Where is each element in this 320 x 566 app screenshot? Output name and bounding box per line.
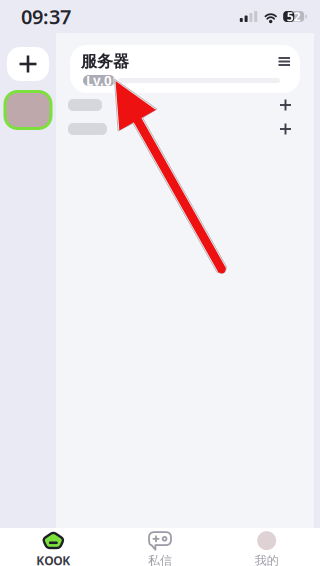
staticText: 52 bbox=[287, 8, 301, 24]
staticText: 我的 bbox=[255, 553, 279, 566]
button[interactable]: Add server bbox=[2, 47, 54, 81]
button[interactable]: 我的 bbox=[213, 524, 320, 566]
button[interactable]: Channel bbox=[64, 93, 306, 117]
button[interactable]: Server avatar bbox=[2, 90, 54, 130]
staticText: KOOK bbox=[36, 552, 70, 566]
button[interactable]: Menu bbox=[272, 48, 296, 75]
staticText: 09:37 bbox=[21, 3, 71, 30]
staticText: 服务器 bbox=[81, 52, 129, 71]
staticText: 私信 bbox=[148, 553, 172, 566]
button[interactable]: KOOK bbox=[0, 523, 107, 566]
staticText: Lv.0 bbox=[86, 72, 112, 89]
button[interactable]: 私信 bbox=[107, 524, 213, 566]
button[interactable]: Channel bbox=[64, 117, 306, 141]
